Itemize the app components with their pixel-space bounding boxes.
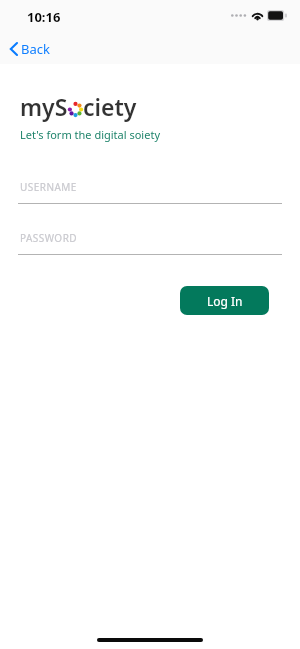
staticText: USERNAME: [20, 180, 77, 194]
staticText: myS: [20, 91, 68, 122]
other: Back: [10, 43, 17, 55]
button[interactable]: Back: [4, 37, 60, 61]
staticText: Log In: [207, 293, 243, 309]
staticText: ciety: [83, 91, 137, 122]
staticText: Back: [21, 40, 50, 58]
staticText: Let's form the digital soiety: [20, 127, 160, 142]
staticText: 10:16: [27, 8, 61, 26]
button[interactable]: PASSWORD: [18, 227, 282, 255]
staticText: PASSWORD: [20, 231, 78, 245]
button[interactable]: Log In: [180, 286, 269, 315]
button[interactable]: USERNAME: [18, 176, 282, 204]
